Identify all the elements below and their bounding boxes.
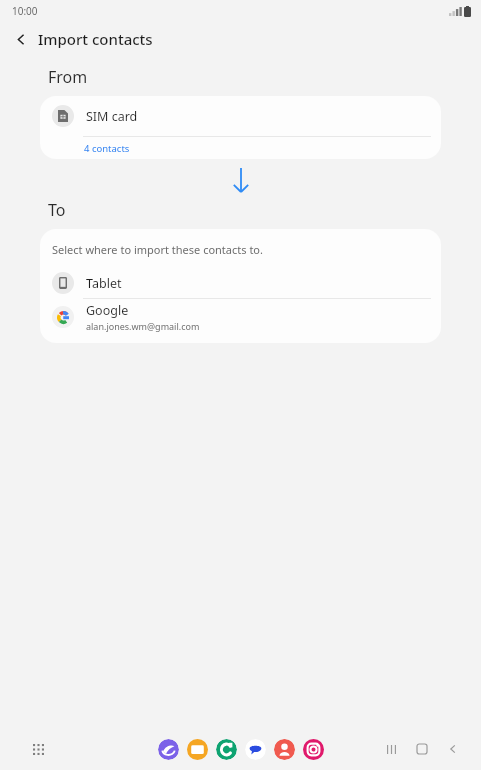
button[interactable]: Messages [245, 739, 266, 760]
button[interactable]: SIM card [40, 96, 441, 136]
staticText: Select where to import these contacts to… [52, 242, 263, 257]
button[interactable]: Back [6, 24, 36, 54]
staticText: Import contacts [38, 29, 153, 49]
button[interactable]: Phone [216, 739, 237, 760]
button[interactable]: Back [441, 737, 465, 761]
button[interactable]: My Files [187, 739, 208, 760]
staticText: Google [86, 302, 129, 319]
staticText: 4 contacts [84, 142, 130, 155]
staticText: From [48, 66, 88, 88]
button[interactable]: Recents [379, 737, 403, 761]
button[interactable]: Internet [158, 739, 179, 760]
button[interactable]: Tablet [40, 268, 441, 298]
staticText: 10:00 [12, 4, 38, 18]
button[interactable]: Instagram [303, 739, 324, 760]
staticText: SIM card [86, 108, 138, 125]
button[interactable]: Google [40, 299, 441, 335]
button[interactable]: Contacts [274, 739, 295, 760]
button[interactable]: Apps [26, 737, 50, 761]
button[interactable]: 4 contacts [40, 137, 441, 159]
staticText: To [48, 199, 66, 221]
button[interactable]: Home [410, 737, 434, 761]
staticText: Tablet [86, 275, 122, 292]
staticText: alan.jones.wm@gmail.com [86, 320, 200, 332]
